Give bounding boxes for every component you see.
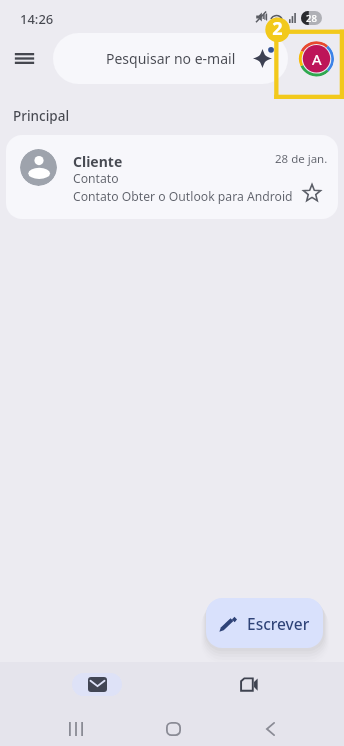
staticText: Contato (73, 170, 119, 187)
staticText: Escrever (247, 613, 310, 634)
staticText: Contato Obter o Outlook para Android (73, 188, 293, 205)
button[interactable]: Pesquisar no e-mail (53, 33, 288, 84)
staticText: Cliente (73, 152, 123, 171)
button[interactable]: Account (298, 41, 334, 77)
button[interactable]: Home (122, 706, 222, 746)
button[interactable]: Open navigation menu (8, 42, 40, 74)
button[interactable]: Meet video call (172, 662, 324, 706)
staticText: Pesquisar no e-mail (106, 49, 236, 68)
staticText: 28 (306, 12, 317, 25)
button[interactable]: Recent apps (26, 706, 126, 746)
button[interactable]: Back (220, 706, 320, 746)
staticText: 2 (272, 16, 283, 41)
staticText: A (312, 49, 322, 69)
button[interactable]: Cliente (6, 135, 338, 219)
button[interactable]: Mail (20, 662, 172, 706)
staticText: Principal (13, 107, 70, 125)
button[interactable]: Star (299, 180, 325, 206)
staticText: 28 de jan. (275, 151, 328, 167)
button[interactable]: Escrever (206, 598, 323, 648)
staticText: 14:26 (20, 10, 54, 28)
